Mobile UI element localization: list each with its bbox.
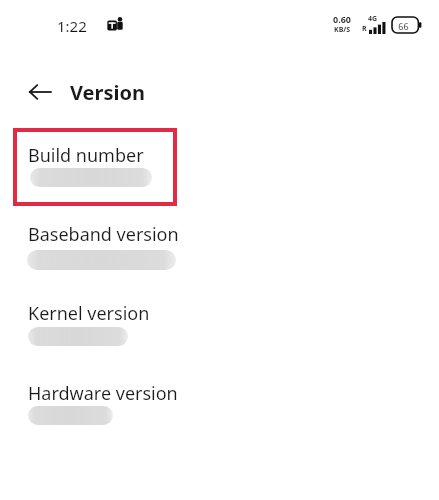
staticText: KB/S xyxy=(334,25,351,35)
staticText: Kernel version xyxy=(28,301,150,326)
staticText: Baseband version xyxy=(28,222,179,247)
button[interactable]: Hardware version xyxy=(0,369,439,433)
button[interactable]: Kernel version xyxy=(0,289,439,354)
staticText: R xyxy=(362,24,367,34)
staticText: 66 xyxy=(398,20,409,32)
staticText: Build number xyxy=(28,143,144,168)
staticText: 4G xyxy=(368,14,378,24)
staticText: Hardware version xyxy=(28,381,178,406)
staticText: Version xyxy=(70,79,145,106)
button[interactable]: Build number xyxy=(0,131,439,195)
button[interactable]: Back xyxy=(18,70,62,114)
button[interactable]: Baseband version xyxy=(0,210,439,278)
staticText: 0.60 xyxy=(333,13,351,25)
staticText: 1:22 xyxy=(57,16,87,36)
